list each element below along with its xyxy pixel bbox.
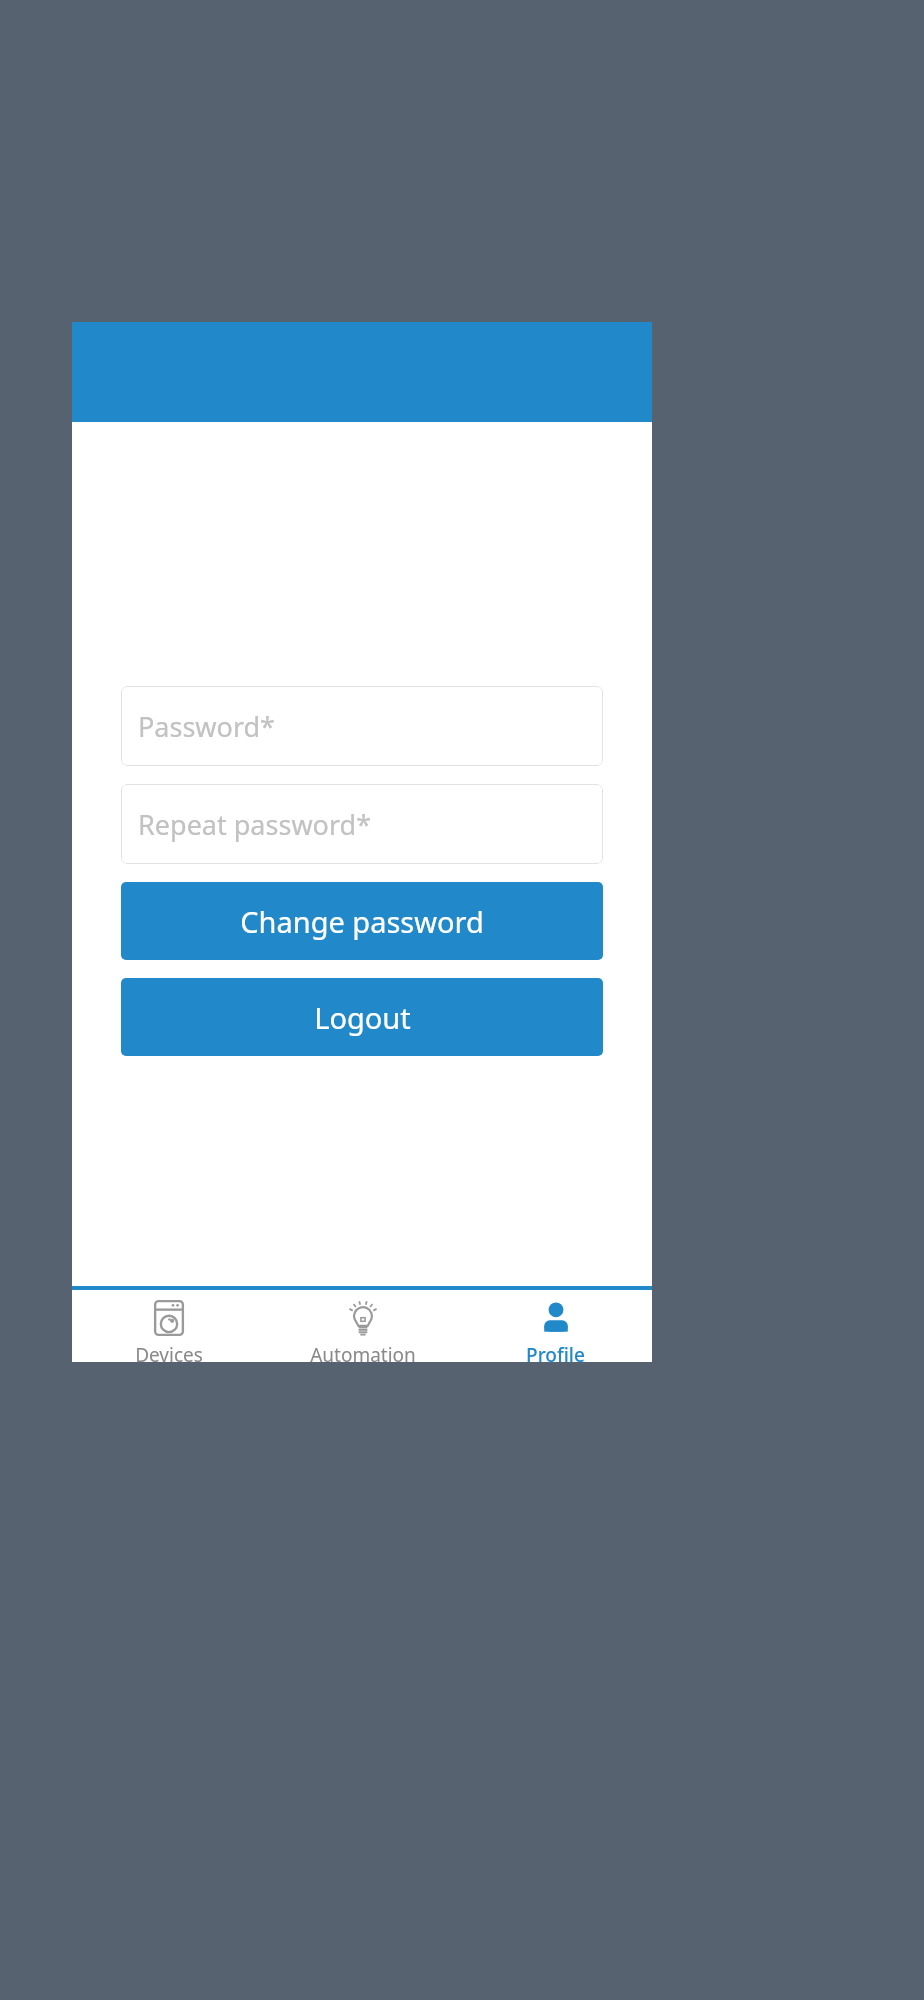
button[interactable]: Password*: [121, 686, 603, 766]
button[interactable]: Profile: [459, 1290, 652, 1362]
staticText: Password*: [138, 708, 275, 745]
staticText: Logout: [314, 998, 411, 1037]
button[interactable]: Devices: [72, 1290, 266, 1362]
staticText: Automation: [310, 1342, 416, 1362]
button[interactable]: Change password: [121, 882, 603, 960]
button[interactable]: Repeat password*: [121, 784, 603, 864]
staticText: Devices: [135, 1342, 203, 1362]
button[interactable]: Logout: [121, 978, 603, 1056]
button[interactable]: Automation: [266, 1290, 459, 1362]
staticText: Change password: [240, 902, 484, 941]
staticText: Profile: [526, 1342, 585, 1362]
staticText: Repeat password*: [138, 806, 372, 843]
